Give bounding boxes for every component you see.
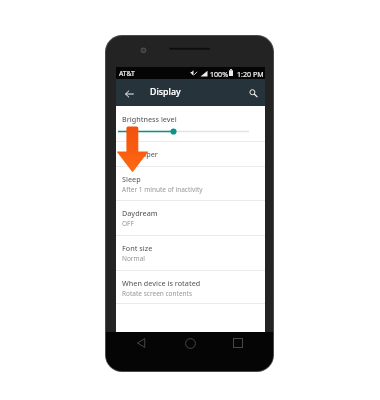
button[interactable]: Back xyxy=(119,84,139,104)
staticText: After 1 minute of inactivity xyxy=(122,185,203,194)
button[interactable]: Brightness level xyxy=(116,106,265,141)
staticText: OFF xyxy=(122,219,134,228)
button[interactable]: Home xyxy=(179,332,201,354)
staticText: AT&T xyxy=(119,69,135,78)
button[interactable]: Back xyxy=(130,332,152,354)
staticText: When device is rotated xyxy=(122,278,201,288)
button[interactable]: Wallpaper xyxy=(116,142,265,166)
button[interactable]: Font size xyxy=(116,236,265,270)
button[interactable]: Recent apps xyxy=(227,332,249,354)
button[interactable]: When device is rotated xyxy=(116,271,265,303)
staticText: Font size xyxy=(122,243,153,253)
staticText: Rotate screen contents xyxy=(122,289,193,298)
button[interactable]: Sleep xyxy=(116,167,265,200)
button[interactable]: Daydream xyxy=(116,201,265,235)
staticText: 100% xyxy=(210,69,229,79)
staticText: Sleep xyxy=(122,174,141,184)
button[interactable]: Search xyxy=(243,83,263,103)
staticText: Wallpaper xyxy=(123,149,158,159)
staticText: Display xyxy=(150,86,181,98)
staticText: Normal xyxy=(122,254,145,263)
staticText: 1:20 PM xyxy=(237,69,264,79)
staticText: Brightness level xyxy=(122,114,177,124)
staticText: Daydream xyxy=(122,208,158,218)
